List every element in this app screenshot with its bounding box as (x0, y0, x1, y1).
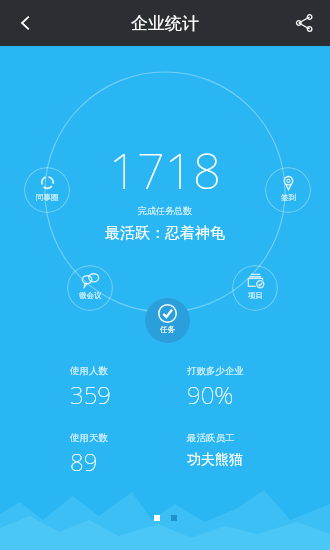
button[interactable]: 微会议 (67, 265, 113, 311)
staticText: 打败多少企业 (187, 365, 244, 377)
staticText: 完成任务总数 (138, 205, 192, 216)
staticText: 微会议 (79, 291, 102, 300)
staticText: 同事圈 (36, 193, 59, 202)
staticText: 签到 (281, 193, 296, 202)
staticText: 企业统计 (131, 13, 199, 34)
staticText: 359 (70, 378, 112, 411)
button[interactable]: 项目 (232, 265, 278, 311)
staticText: 功夫熊猫 (187, 451, 243, 469)
staticText: 使用人数 (70, 365, 108, 377)
staticText: 最活跃员工 (187, 432, 235, 444)
staticText: 使用天数 (70, 432, 108, 444)
staticText: 89 (70, 445, 98, 478)
button[interactable]: 签到 (265, 167, 311, 213)
button[interactable]: 任务 (145, 298, 190, 343)
staticText: 1718 (109, 137, 221, 204)
button[interactable]: Share (278, 0, 330, 46)
staticText: 90% (187, 378, 234, 411)
staticText: 任务 (160, 325, 175, 334)
staticText: 最活跃：忍着神龟 (105, 224, 225, 243)
button[interactable]: 同事圈 (24, 167, 70, 213)
staticText: 项目 (248, 291, 263, 300)
button[interactable]: Back (0, 0, 52, 46)
